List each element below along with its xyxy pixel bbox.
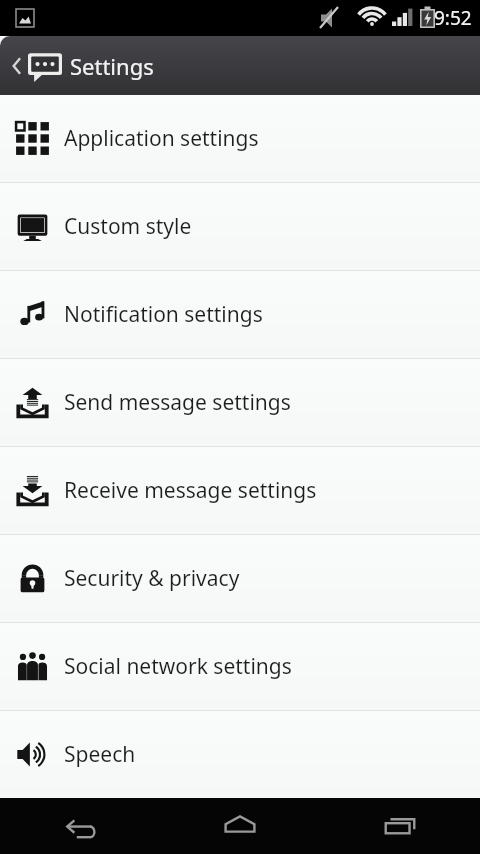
button[interactable]: Speech <box>0 711 480 798</box>
button[interactable]: Home <box>160 798 320 854</box>
staticText: Speech <box>64 740 136 769</box>
staticText: Social network settings <box>64 652 292 681</box>
button[interactable]: Security & privacy <box>0 535 480 622</box>
staticText: Custom style <box>64 212 192 241</box>
button[interactable]: Social network settings <box>0 623 480 710</box>
button[interactable]: Receive message settings <box>0 447 480 534</box>
staticText: Security & privacy <box>64 564 240 593</box>
staticText: Receive message settings <box>64 476 317 505</box>
button[interactable]: Custom style <box>0 183 480 270</box>
staticText: Notification settings <box>64 300 263 329</box>
button[interactable]: Back <box>0 798 160 854</box>
staticText: 9:52 <box>434 5 472 31</box>
button[interactable]: Send message settings <box>0 359 480 446</box>
staticText: Send message settings <box>64 388 291 417</box>
button[interactable]: Notification settings <box>0 271 480 358</box>
staticText: Settings <box>70 51 154 81</box>
button[interactable]: Up, Settings <box>0 36 480 95</box>
button[interactable]: Application settings <box>0 95 480 182</box>
staticText: Application settings <box>64 124 259 153</box>
button[interactable]: Recent apps <box>320 798 480 854</box>
